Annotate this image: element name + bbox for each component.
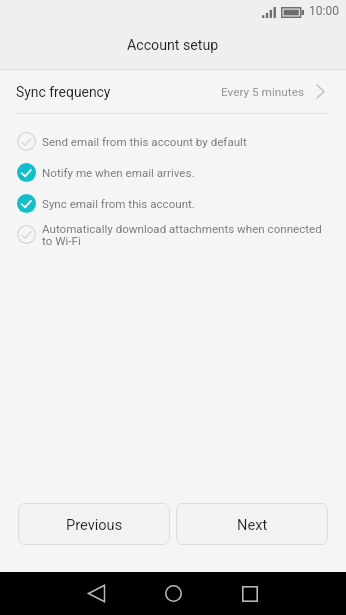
button[interactable]: Back xyxy=(68,572,124,615)
button[interactable]: Notify me when email arrives. xyxy=(0,157,346,188)
button[interactable]: Send email from this account by default xyxy=(0,126,346,157)
staticText: Sync frequency xyxy=(16,84,111,100)
staticText: 10:00 xyxy=(309,4,339,18)
staticText: Send email from this account by default xyxy=(42,136,247,148)
staticText: Next xyxy=(237,516,268,533)
staticText: Previous xyxy=(66,516,123,533)
button[interactable]: Previous xyxy=(18,503,170,545)
staticText: Every 5 minutes xyxy=(221,85,305,99)
button[interactable]: Sync email from this account. xyxy=(0,188,346,219)
button[interactable]: Sync frequency xyxy=(0,70,346,113)
staticText: Notify me when email arrives. xyxy=(42,167,195,179)
button[interactable]: Home xyxy=(145,572,201,615)
button[interactable]: Automatically download attachments when … xyxy=(0,219,346,250)
staticText: Sync email from this account. xyxy=(42,198,195,210)
button[interactable]: Recent apps xyxy=(222,572,278,615)
button[interactable]: Next xyxy=(176,503,328,545)
staticText: Automatically download attachments when … xyxy=(42,223,328,247)
staticText: Account setup xyxy=(127,37,219,54)
